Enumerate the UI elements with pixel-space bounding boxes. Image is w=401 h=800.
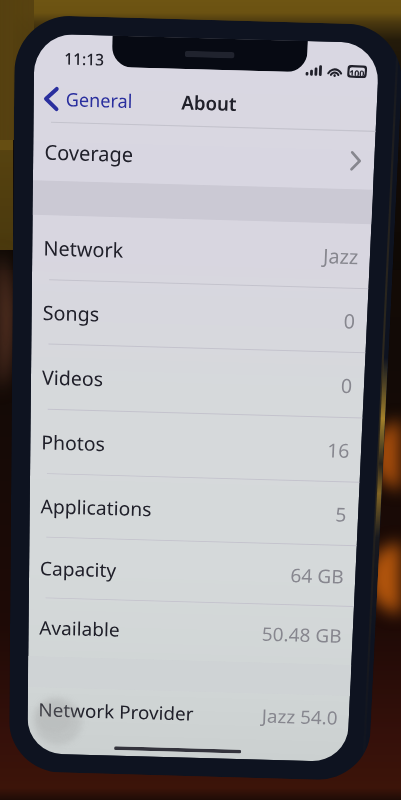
button[interactable]: Network Provider [27,687,350,740]
staticText: Jazz [323,241,359,270]
staticText: 0 [343,307,356,335]
staticText: 100 [349,67,365,76]
staticText: Jazz 54.0 [261,703,339,730]
staticText: 11:13 [64,47,105,70]
button[interactable]: Photos [29,409,362,482]
button[interactable]: Available [27,598,354,665]
staticText: Capacity [39,555,117,583]
other: Open Coverage [350,152,361,169]
staticText: Photos [41,428,106,457]
staticText: 50.48 GB [261,621,342,648]
staticText: Videos [41,363,104,392]
staticText: About [181,89,238,117]
button[interactable]: Network [31,215,371,288]
staticText: Coverage [44,137,134,168]
staticText: 64 GB [290,562,345,589]
button[interactable]: Coverage [32,122,376,190]
staticText: 0 [340,372,354,399]
staticText: Network Provider [38,697,194,726]
staticText: General [65,86,133,113]
button[interactable]: Videos [29,344,365,418]
staticText: Network [43,234,124,264]
button[interactable]: Songs [30,280,368,352]
staticText: 16 [327,436,351,464]
staticText: Available [39,614,121,642]
staticText: Applications [40,493,153,522]
button[interactable]: Capacity [28,537,357,606]
button[interactable]: Applications [28,474,360,545]
staticText: 5 [335,501,348,527]
button[interactable]: General [33,80,144,119]
staticText: Songs [42,298,100,328]
